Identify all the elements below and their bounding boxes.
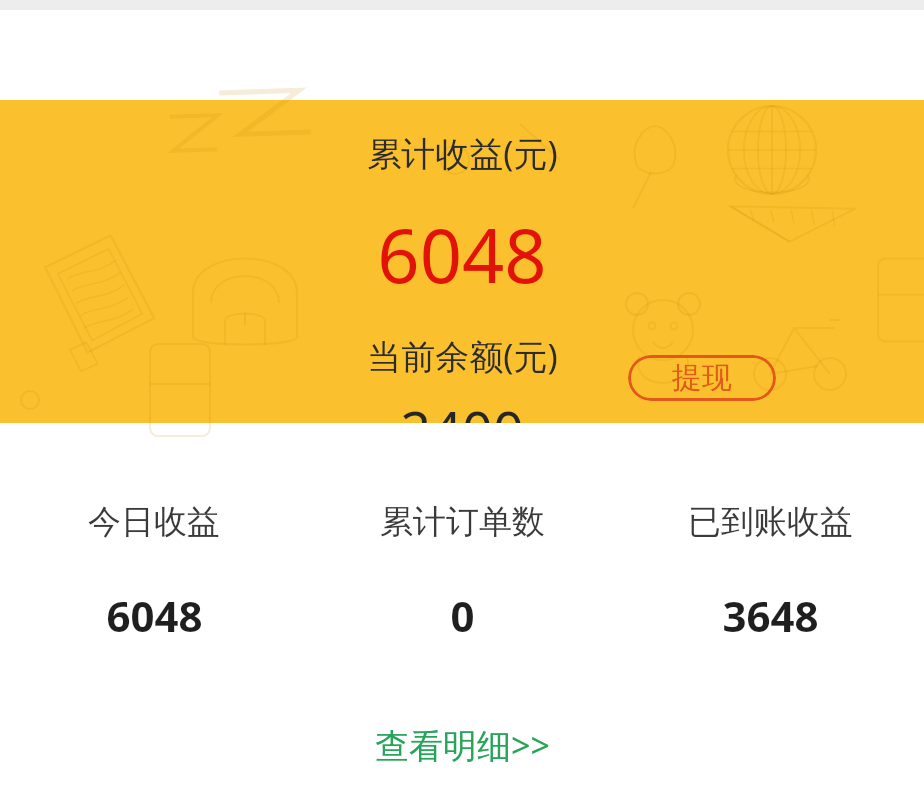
- staticText: 累计收益(元): [367, 130, 558, 176]
- staticText: 6048: [106, 587, 203, 644]
- button[interactable]: 累计订单数: [380, 501, 545, 644]
- staticText: 已到账收益: [688, 501, 853, 543]
- button[interactable]: 今日收益: [88, 501, 220, 644]
- staticText: 当前余额(元): [367, 333, 558, 379]
- staticText: 查看明细>>: [375, 722, 550, 768]
- staticText: 2400: [400, 393, 524, 423]
- button[interactable]: 已到账收益: [688, 501, 853, 644]
- staticText: 今日收益: [88, 501, 220, 543]
- staticText: 6048: [377, 204, 547, 305]
- staticText: 3648: [722, 587, 819, 644]
- button[interactable]: 提现: [628, 355, 776, 401]
- button[interactable]: 查看明细>>: [359, 716, 566, 774]
- staticText: 0: [450, 587, 475, 644]
- staticText: 累计订单数: [380, 501, 545, 543]
- staticText: 提现: [672, 359, 732, 397]
